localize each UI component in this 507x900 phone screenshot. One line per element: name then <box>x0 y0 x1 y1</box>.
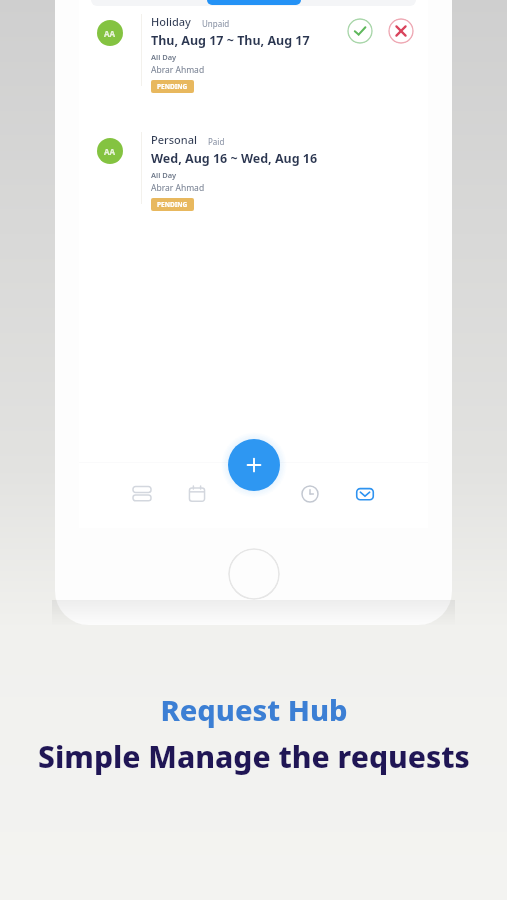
button[interactable]: Home <box>228 548 280 600</box>
staticText: AA <box>104 28 116 39</box>
staticText: Request Hub <box>160 690 348 729</box>
staticText: Abrar Ahmad <box>151 64 205 76</box>
staticText: Wed, Aug 16 ~ Wed, Aug 16 <box>151 150 318 167</box>
staticText: Abrar Ahmad <box>151 182 205 194</box>
staticText: Unpaid <box>202 18 230 29</box>
staticText: AA <box>104 146 116 157</box>
staticText: Paid <box>208 136 225 147</box>
button[interactable]: Add request <box>228 439 280 491</box>
button[interactable] <box>207 0 301 5</box>
button[interactable]: AA <box>79 14 428 93</box>
staticText: All Day <box>151 170 177 180</box>
button[interactable]: Inbox <box>345 474 385 514</box>
button[interactable]: Calendar <box>177 474 217 514</box>
button[interactable]: Reject <box>388 18 414 44</box>
staticText: PENDING <box>157 200 188 209</box>
button[interactable]: Recent <box>290 474 330 514</box>
staticText: Simple Manage the requests <box>38 736 470 777</box>
staticText: Thu, Aug 17 ~ Thu, Aug 17 <box>151 32 310 49</box>
button[interactable]: AA <box>79 132 428 211</box>
staticText: PENDING <box>157 82 188 91</box>
staticText: All Day <box>151 52 177 62</box>
button[interactable]: Approve <box>347 18 373 44</box>
staticText: Personal <box>151 132 197 147</box>
button[interactable]: Requests list <box>122 474 162 514</box>
staticText: Holiday <box>151 14 191 29</box>
